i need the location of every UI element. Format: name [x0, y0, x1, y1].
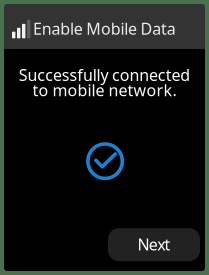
staticText: Next [138, 234, 170, 255]
staticText: Enable Mobile Data [33, 18, 176, 39]
staticText: Successfully connected [19, 64, 190, 85]
staticText: to mobile network. [32, 79, 176, 101]
button[interactable]: Next [108, 228, 200, 261]
